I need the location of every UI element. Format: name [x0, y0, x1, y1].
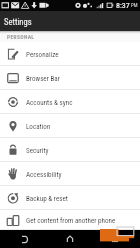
button[interactable]: Backup & reset: [0, 186, 140, 210]
staticText: Settings: [4, 17, 32, 27]
staticText: Accessibility: [26, 170, 62, 178]
button[interactable]: Security: [0, 138, 140, 162]
button[interactable]: Back: [5, 230, 45, 248]
button[interactable]: Browser Bar: [0, 66, 140, 90]
staticText: Accounts & sync: [26, 98, 73, 106]
staticText: PERSONAL: [7, 34, 35, 40]
button[interactable]: Location: [0, 114, 140, 138]
button[interactable]: Home: [50, 230, 90, 248]
button[interactable]: Accounts & sync: [0, 90, 140, 114]
button[interactable]: Accessibility: [0, 162, 140, 186]
staticText: Get content from another phone: [26, 216, 116, 224]
staticText: Location: [26, 122, 51, 130]
staticText: Personalize: [26, 50, 59, 58]
staticText: Security: [26, 146, 49, 154]
staticText: Backup & reset: [26, 194, 68, 202]
staticText: 8:37: [116, 1, 130, 10]
staticText: PM: [131, 2, 138, 8]
button[interactable]: Get content from another phone: [0, 210, 140, 230]
button[interactable]: Recent apps: [95, 230, 135, 248]
staticText: Browser Bar: [26, 74, 60, 82]
button[interactable]: Personalize: [0, 42, 140, 66]
